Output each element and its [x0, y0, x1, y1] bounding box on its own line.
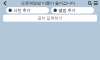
- staticText: 사진 추가: [13, 8, 30, 13]
- button[interactable]: Back: [2, 1, 8, 6]
- button[interactable]: Search: [88, 1, 92, 5]
- staticText: 앨범 추가: [58, 8, 75, 13]
- button[interactable]: 사진 추가: [6, 7, 49, 13]
- staticText: 공지 입력하기: [37, 16, 62, 21]
- staticText: 오픈채팅방 이름이 들어갑니다: [21, 1, 75, 6]
- button[interactable]: Menu: [92, 1, 98, 5]
- button[interactable]: 앨범 추가: [51, 7, 94, 13]
